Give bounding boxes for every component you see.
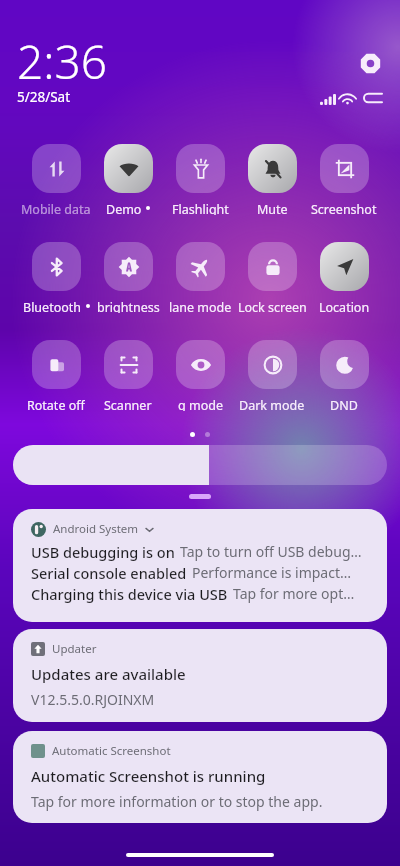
button[interactable]: Bluetooth [20, 242, 92, 313]
staticText: Location [319, 299, 370, 313]
staticText: DND [330, 397, 358, 411]
staticText: Screenshot [311, 201, 377, 215]
staticText: Mobile data [21, 201, 91, 215]
staticText: Automatic Screenshot [52, 743, 171, 759]
staticText: Scanner [104, 397, 152, 411]
staticText: brightness [97, 299, 160, 313]
button[interactable]: Demo [92, 144, 164, 215]
button[interactable]: lane mode [164, 242, 236, 313]
staticText: Updater [52, 641, 97, 657]
button[interactable]: DND [308, 340, 380, 411]
button[interactable] [13, 445, 387, 485]
staticText: Tap for more opt… [233, 584, 355, 603]
staticText: Rotate off [27, 397, 85, 411]
staticText: Demo [106, 201, 142, 215]
button[interactable]: Mobile data [20, 144, 92, 215]
button[interactable]: Screenshot [308, 144, 380, 215]
staticText: lane mode [169, 299, 232, 313]
staticText: Performance is impact… [192, 563, 352, 582]
button[interactable]: Screen recorder [360, 53, 381, 74]
button[interactable]: Android System [13, 509, 387, 622]
staticText: g mode [178, 397, 223, 411]
staticText: Bluetooth [23, 299, 82, 313]
staticText: USB debugging is on [31, 542, 175, 562]
staticText: Updates are available [31, 664, 186, 684]
staticText: Charging this device via USB [31, 584, 228, 604]
button[interactable]: Updater [13, 629, 387, 722]
button[interactable]: brightness [92, 242, 164, 313]
staticText: Serial console enabled [31, 563, 187, 583]
staticText: Mute [257, 201, 288, 215]
staticText: 2:36 [17, 30, 108, 93]
staticText: 5/28/Sat [17, 88, 71, 106]
staticText: Tap to turn off USB debug… [180, 542, 362, 561]
button[interactable]: Flashlight [164, 144, 236, 215]
button[interactable]: Automatic Screenshot [13, 731, 387, 823]
staticText: Lock screen [238, 299, 307, 313]
button[interactable]: g mode [164, 340, 236, 411]
staticText: Flashlight [172, 201, 229, 215]
staticText: Dark mode [239, 397, 305, 411]
button[interactable]: Location [308, 242, 380, 313]
staticText: Android System [53, 521, 139, 537]
button[interactable]: Scanner [92, 340, 164, 411]
staticText: V12.5.5.0.RJOINXM [31, 690, 155, 709]
button[interactable]: Rotate off [20, 340, 92, 411]
button[interactable]: Lock screen [236, 242, 308, 313]
button[interactable]: Mute [236, 144, 308, 215]
button[interactable]: Dark mode [236, 340, 308, 411]
staticText: Tap for more information or to stop the … [31, 792, 323, 811]
staticText: Automatic Screenshot is running [31, 766, 266, 786]
